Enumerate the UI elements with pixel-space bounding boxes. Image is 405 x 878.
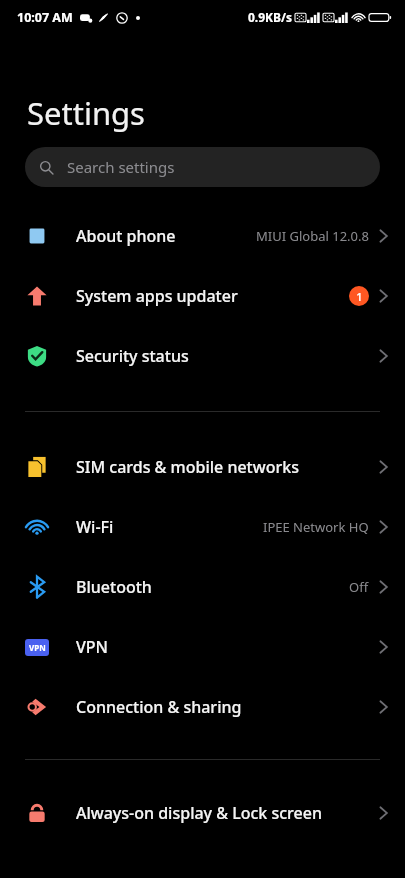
other: Open: [379, 519, 388, 535]
staticText: 10:07 AM: [17, 9, 73, 26]
button[interactable]: Connection & sharing: [0, 677, 405, 737]
staticText: SIM cards & mobile networks: [76, 456, 379, 478]
button[interactable]: VPN: [0, 617, 405, 677]
staticText: 0.9KB/s: [248, 9, 293, 25]
staticText: About phone: [76, 225, 256, 247]
button[interactable]: System apps updater: [0, 266, 405, 326]
button[interactable]: About phone: [0, 206, 405, 266]
other: Open: [379, 805, 388, 821]
other: Open: [379, 459, 388, 475]
staticText: MIUI Global 12.0.8: [256, 227, 369, 245]
staticText: Settings: [27, 92, 145, 134]
other: Open: [379, 288, 388, 304]
staticText: Off: [349, 578, 369, 596]
other: Open: [379, 348, 388, 364]
staticText: 1: [356, 289, 363, 304]
staticText: Search settings: [67, 157, 175, 177]
other: Open: [379, 228, 388, 244]
button[interactable]: Search settings: [25, 147, 380, 187]
button[interactable]: Security status: [0, 326, 405, 386]
staticText: VPN: [29, 642, 46, 653]
staticText: Always-on display & Lock screen: [76, 802, 379, 824]
other: Open: [379, 639, 388, 655]
staticText: Bluetooth: [76, 576, 349, 598]
button[interactable]: Wi-Fi: [0, 497, 405, 557]
button[interactable]: Bluetooth: [0, 557, 405, 617]
other: Open: [379, 579, 388, 595]
staticText: IPEE Network HQ: [263, 518, 369, 536]
button[interactable]: SIM cards & mobile networks: [0, 437, 405, 497]
button[interactable]: Always-on display & Lock screen: [0, 786, 405, 840]
staticText: System apps updater: [76, 285, 349, 307]
staticText: Wi-Fi: [76, 516, 263, 538]
other: Open: [379, 699, 388, 715]
staticText: Security status: [76, 345, 379, 367]
staticText: VPN: [76, 636, 379, 658]
staticText: Connection & sharing: [76, 696, 379, 718]
